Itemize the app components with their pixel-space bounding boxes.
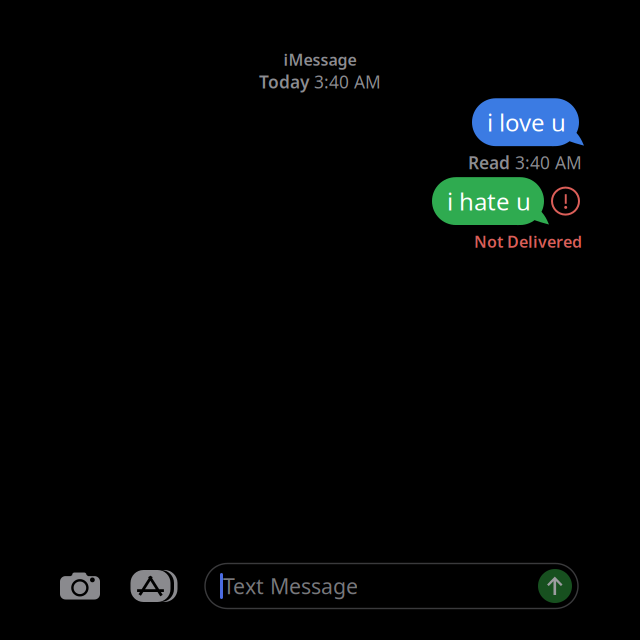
staticText: Read 3:40 AM [468, 151, 582, 174]
button[interactable]: iMessage apps [115, 563, 186, 609]
staticText: Text Message [223, 572, 358, 600]
staticText: Not Delivered [474, 231, 582, 252]
staticText: i hate u [447, 185, 531, 217]
staticText: i love u [487, 106, 566, 138]
button[interactable]: Take photo [45, 563, 115, 609]
button[interactable]: Send [536, 564, 574, 608]
staticText: Today 3:40 AM [259, 70, 381, 93]
staticText: iMessage [283, 49, 356, 70]
